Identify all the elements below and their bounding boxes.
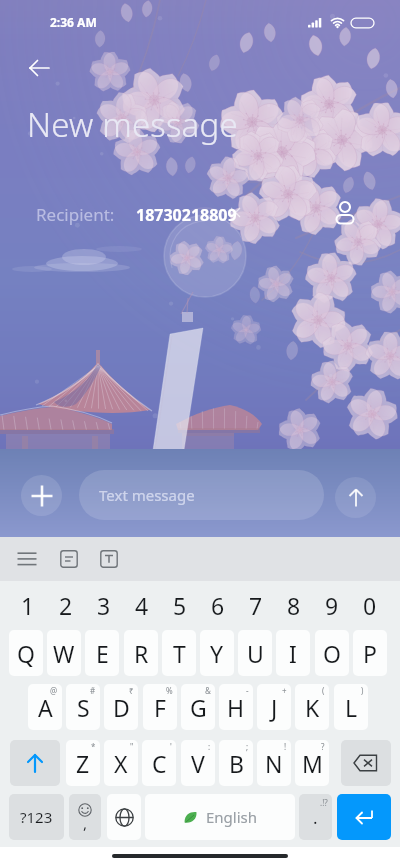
staticText: C [152, 748, 167, 779]
button[interactable]: I [276, 630, 310, 676]
button[interactable]: X [104, 740, 138, 786]
staticText: English [206, 807, 258, 827]
button[interactable]: Text editing [95, 545, 123, 573]
staticText: , [83, 813, 88, 833]
staticText: 1 [21, 590, 35, 621]
staticText: # [90, 685, 96, 696]
button[interactable]: .!? [299, 794, 332, 840]
button[interactable]: A [28, 684, 62, 730]
staticText: ) [361, 685, 364, 696]
button[interactable]: Clipboard [55, 545, 83, 573]
staticText: 18730218809 [136, 204, 237, 226]
button[interactable]: K [295, 684, 329, 730]
button[interactable]: Back [22, 50, 58, 86]
staticText: J [271, 692, 278, 723]
staticText: - [246, 685, 249, 696]
button[interactable]: N [257, 740, 291, 786]
button[interactable]: Q [9, 630, 43, 676]
staticText: U [247, 638, 264, 669]
button[interactable]: Enter [337, 794, 391, 840]
button[interactable]: Menu [13, 547, 41, 571]
staticText: N [265, 748, 283, 779]
staticText: ' [170, 741, 172, 752]
staticText: ? [321, 741, 325, 752]
staticText: New message [27, 102, 238, 147]
staticText: " [130, 741, 134, 752]
button[interactable]: R [124, 630, 158, 676]
button[interactable]: T [162, 630, 196, 676]
staticText: X [114, 748, 128, 779]
button[interactable]: O [315, 630, 349, 676]
staticText: ( [322, 685, 325, 696]
button[interactable]: 7 [237, 585, 275, 625]
staticText: . [313, 806, 318, 829]
staticText: 2:36 AM [50, 14, 97, 30]
button[interactable]: W [47, 630, 81, 676]
button[interactable]: D [104, 684, 138, 730]
staticText: M [302, 748, 323, 779]
staticText: : [208, 741, 211, 752]
staticText: 3 [97, 590, 111, 621]
button[interactable]: Change language [107, 794, 141, 840]
staticText: * [91, 741, 96, 752]
button[interactable]: F [143, 684, 177, 730]
staticText: R [134, 638, 149, 669]
staticText: A [38, 692, 53, 723]
button[interactable]: Text message [79, 470, 324, 520]
button[interactable]: U [238, 630, 272, 676]
staticText: @ [50, 685, 58, 696]
button[interactable]: Emoji [69, 794, 101, 840]
staticText: O [323, 638, 341, 669]
staticText: 0 [363, 590, 377, 621]
staticText: Recipient: [36, 203, 115, 226]
staticText: W [53, 638, 75, 669]
button[interactable]: Backspace [341, 740, 391, 786]
button[interactable]: English [145, 794, 295, 840]
button[interactable]: Y [200, 630, 234, 676]
button[interactable]: V [181, 740, 215, 786]
button[interactable]: 6 [199, 585, 237, 625]
staticText: E [96, 638, 109, 669]
button[interactable]: J [257, 684, 291, 730]
staticText: % [166, 685, 173, 696]
button[interactable]: 9 [313, 585, 351, 625]
button[interactable]: 4 [123, 585, 161, 625]
staticText: Text message [99, 485, 195, 505]
button[interactable]: H [219, 684, 253, 730]
staticText: 8 [287, 590, 301, 621]
staticText: D [113, 692, 130, 723]
button[interactable]: G [181, 684, 215, 730]
button[interactable]: 2 [47, 585, 85, 625]
staticText: H [227, 692, 245, 723]
button[interactable]: Z [66, 740, 100, 786]
staticText: ! [284, 741, 287, 752]
staticText: G [190, 692, 207, 723]
button[interactable]: ?123 [9, 794, 64, 840]
staticText: 7 [249, 590, 263, 621]
button[interactable]: 3 [85, 585, 123, 625]
button[interactable]: Choose contact [328, 195, 362, 229]
button[interactable]: E [85, 630, 119, 676]
button[interactable]: Add attachment [21, 475, 62, 516]
button[interactable]: 0 [351, 585, 389, 625]
staticText: ; [246, 741, 249, 752]
button[interactable]: 5 [161, 585, 199, 625]
staticText: Q [17, 638, 35, 669]
staticText: B [229, 748, 244, 779]
staticText: L [345, 692, 358, 723]
button[interactable]: S [66, 684, 100, 730]
button[interactable]: P [353, 630, 387, 676]
button[interactable]: B [219, 740, 253, 786]
button[interactable]: 8 [275, 585, 313, 625]
button[interactable]: M [295, 740, 329, 786]
button[interactable]: Shift [10, 740, 60, 786]
button[interactable]: Send [335, 477, 376, 518]
button[interactable]: 1 [9, 585, 47, 625]
staticText: ₹ [129, 685, 134, 696]
button[interactable]: C [142, 740, 176, 786]
staticText: + [282, 685, 287, 696]
staticText: 6 [211, 590, 225, 621]
button[interactable]: L [334, 684, 368, 730]
staticText: 4 [135, 590, 149, 621]
staticText: .!? [320, 797, 328, 808]
